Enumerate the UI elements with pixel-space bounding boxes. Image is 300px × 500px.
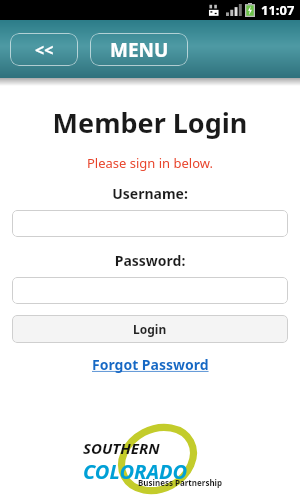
- staticText: Forgot Password: [92, 355, 209, 374]
- button[interactable]: Forgot Password: [86, 353, 215, 376]
- button[interactable]: MENU: [90, 33, 188, 66]
- staticText: Member Login: [0, 104, 300, 141]
- button[interactable]: Login: [12, 315, 288, 343]
- staticText: MENU: [110, 37, 169, 63]
- staticText: Username:: [0, 184, 300, 203]
- button[interactable]: Text input: [12, 277, 288, 304]
- staticText: Login: [133, 321, 167, 337]
- button[interactable]: Back: [10, 33, 78, 66]
- staticText: 11:07: [261, 1, 295, 19]
- staticText: Business Partnership: [138, 477, 223, 488]
- staticText: SOUTHERN: [83, 438, 160, 458]
- staticText: Please sign in below.: [0, 154, 300, 172]
- staticText: <<: [35, 39, 54, 61]
- button[interactable]: Text input: [12, 210, 288, 237]
- staticText: Password:: [0, 251, 300, 270]
- staticText: COLORADO: [83, 458, 188, 485]
